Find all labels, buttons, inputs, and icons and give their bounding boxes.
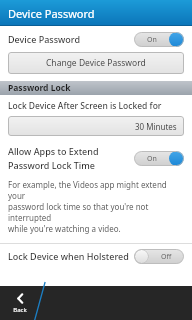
staticText: while you're watching a video.: [8, 223, 121, 234]
staticText: Off: [161, 252, 172, 262]
button[interactable]: Change Device Password: [8, 52, 184, 74]
button[interactable]: Allow Apps to Extend: [0, 145, 192, 171]
staticText: Allow Apps to Extend: [8, 145, 99, 157]
staticText: Lock Device when Holstered: [8, 250, 129, 262]
button[interactable]: On: [134, 32, 184, 47]
button[interactable]: Lock Device when Holstered: [0, 244, 192, 268]
staticText: Password Lock Time: [8, 159, 95, 171]
staticText: On: [147, 154, 157, 164]
button[interactable]: On: [134, 151, 184, 166]
staticText: Lock Device After Screen is Locked for: [8, 100, 162, 112]
staticText: Password Lock: [8, 82, 71, 94]
staticText: password lock time so that you're not in…: [8, 201, 184, 223]
staticText: On: [147, 35, 157, 45]
staticText: Device Password: [8, 33, 81, 45]
staticText: Device Password: [8, 6, 95, 21]
button[interactable]: Device Password: [0, 26, 192, 52]
staticText: For example, the Videos app might extend…: [8, 179, 184, 201]
button[interactable]: 30 Minutes: [8, 116, 184, 136]
button[interactable]: Off: [134, 249, 184, 264]
staticText: Back: [13, 306, 27, 314]
staticText: Change Device Password: [46, 57, 146, 69]
staticText: 30 Minutes: [135, 121, 177, 132]
button[interactable]: Back: [0, 286, 40, 320]
